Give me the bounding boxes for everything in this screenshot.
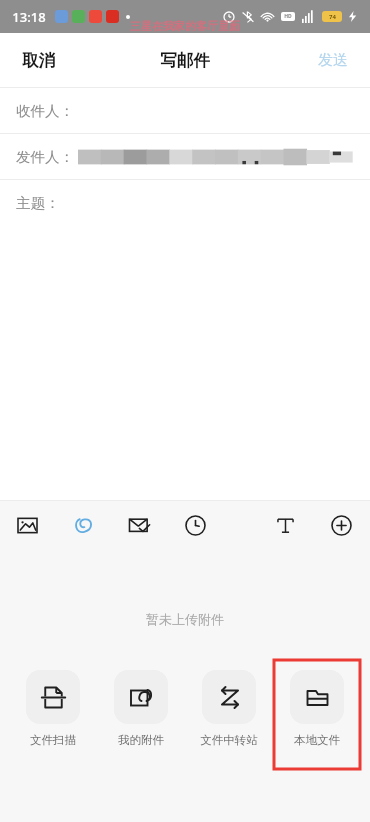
button[interactable]: Insert image [12,510,42,540]
button[interactable]: 收件人： [0,88,370,133]
staticText: HD [284,13,292,20]
staticText: 暂未上传附件 [146,611,224,627]
button[interactable]: 发送 [296,36,370,85]
staticText: 本地文件 [294,733,340,747]
button[interactable]: Local files [274,663,360,754]
staticText: 文件扫描 [30,733,76,747]
staticText: 文件中转站 [200,733,258,747]
button[interactable]: Text format [270,510,300,540]
button[interactable]: Schedule send [180,510,210,540]
staticText: 74 [329,13,336,21]
button[interactable]: Scan document [10,663,96,754]
staticText: 主题： [16,194,60,212]
staticText: 三星在我家的客厅里面 [130,19,240,33]
staticText: 13:18 [12,8,46,26]
button[interactable]: File transfer station [186,663,272,754]
button[interactable]: Insert link [68,510,98,540]
staticText: 发件人： [16,148,74,166]
staticText: 发送 [318,51,348,70]
button[interactable]: More options [326,510,356,540]
button[interactable]: Read receipt [124,510,154,540]
button[interactable]: My attachments [98,663,184,754]
staticText: 收件人： [16,102,74,120]
button[interactable]: 主题： [0,180,370,225]
staticText: 写邮件 [160,50,210,71]
staticText: 我的附件 [118,733,164,747]
staticText: 取消 [22,50,55,71]
button[interactable]: 发件人： [0,134,370,179]
button[interactable]: 取消 [0,35,77,86]
